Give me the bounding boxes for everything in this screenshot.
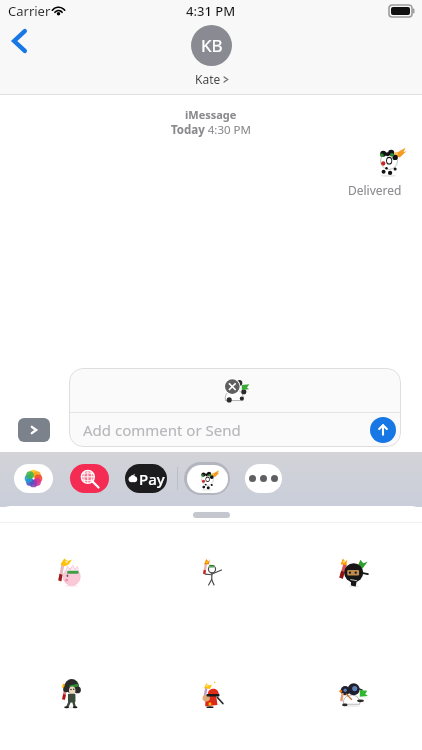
staticText: iMessage bbox=[185, 107, 237, 122]
staticText: 4:31 PM bbox=[186, 2, 236, 20]
button[interactable]: Stickers bbox=[184, 462, 230, 495]
button[interactable]: Sticker bbox=[40, 662, 100, 722]
staticText: Kate bbox=[195, 71, 221, 87]
staticText: KB bbox=[201, 34, 223, 57]
staticText: Today 4:30 PM bbox=[171, 122, 251, 138]
button[interactable]: Search images bbox=[70, 464, 109, 493]
button[interactable]: Expand bbox=[18, 418, 50, 442]
button[interactable]: More apps bbox=[245, 464, 282, 493]
button[interactable]: Apple Pay bbox=[125, 464, 167, 493]
staticText: Add comment or Send bbox=[83, 420, 241, 440]
button[interactable]: Sticker bbox=[323, 662, 383, 722]
staticText: Delivered bbox=[348, 182, 402, 198]
button[interactable]: Sticker bbox=[182, 542, 242, 602]
button[interactable]: Sticker bbox=[182, 662, 242, 722]
button[interactable]: KB bbox=[191, 25, 232, 87]
staticText: Pay bbox=[139, 469, 165, 489]
button[interactable]: Send bbox=[370, 417, 396, 443]
button[interactable]: Sticker bbox=[323, 542, 383, 602]
button[interactable]: Back bbox=[2, 22, 40, 60]
button[interactable]: Photos bbox=[14, 464, 53, 493]
staticText: Carrier bbox=[8, 2, 51, 20]
button[interactable]: Sticker bbox=[40, 542, 100, 602]
